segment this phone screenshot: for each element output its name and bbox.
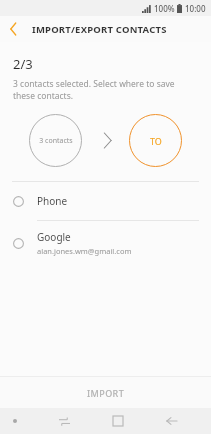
- staticText: 10:00: [185, 3, 206, 14]
- button[interactable]: IMPORT: [0, 377, 211, 408]
- staticText: 3 contacts: [39, 136, 73, 146]
- button[interactable]: Recent apps: [44, 408, 84, 434]
- button[interactable]: Back: [151, 408, 191, 434]
- staticText: TO: [150, 135, 162, 147]
- button[interactable]: Navigate up: [0, 16, 26, 42]
- button[interactable]: Phone: [0, 182, 211, 220]
- staticText: Phone: [37, 194, 68, 208]
- button[interactable]: TO: [129, 114, 182, 167]
- button[interactable]: 3 contacts: [29, 114, 82, 167]
- staticText: alan.jones.wm@gmail.com: [37, 246, 132, 256]
- staticText: 3 contacts selected. Select where to sav…: [13, 78, 197, 102]
- staticText: IMPORT: [87, 387, 125, 399]
- staticText: IMPORT/EXPORT CONTACTS: [32, 23, 167, 36]
- staticText: Google: [37, 230, 71, 244]
- staticText: 100%: [154, 3, 175, 14]
- button[interactable]: Home: [98, 408, 138, 434]
- button[interactable]: Menu: [0, 408, 30, 434]
- button[interactable]: Google: [0, 221, 211, 265]
- staticText: 2/3: [13, 55, 33, 73]
